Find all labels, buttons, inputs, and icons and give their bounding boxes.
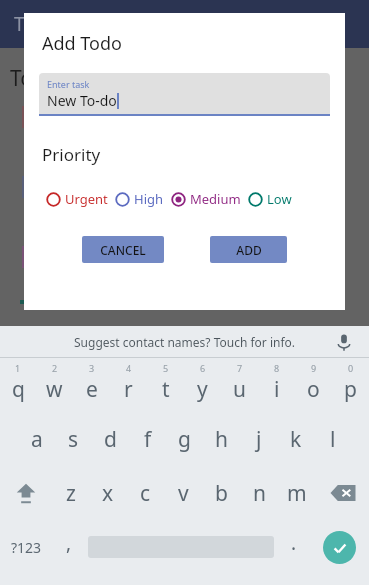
button[interactable]: Voice input — [333, 331, 355, 353]
button[interactable]: ?123 — [0, 520, 52, 574]
staticText: d — [104, 425, 117, 454]
staticText: CANCEL — [100, 242, 146, 258]
button[interactable]: Space — [85, 520, 277, 574]
staticText: ADD — [236, 242, 262, 258]
button[interactable]: l — [314, 412, 351, 466]
staticText: j — [256, 425, 262, 454]
button[interactable]: x — [89, 466, 126, 520]
staticText: y — [197, 375, 208, 404]
staticText: k — [290, 425, 302, 454]
staticText: Todo — [14, 11, 58, 37]
staticText: n — [253, 479, 266, 508]
button[interactable]: 8 — [258, 358, 295, 412]
staticText: Medium — [190, 190, 241, 208]
staticText: m — [287, 479, 307, 508]
staticText: Urgent — [65, 190, 108, 208]
staticText: High — [134, 190, 164, 208]
button[interactable]: CANCEL — [82, 236, 164, 263]
staticText: 6 — [200, 362, 206, 374]
button[interactable]: Backspace — [316, 466, 369, 520]
staticText: 5 — [163, 362, 169, 374]
button[interactable]: 6 — [184, 358, 221, 412]
button[interactable]: f — [129, 412, 166, 466]
button[interactable]: Shift — [0, 466, 52, 520]
staticText: 8 — [274, 362, 280, 374]
button[interactable]: 1 — [0, 358, 36, 412]
staticText: Enter task — [47, 78, 90, 90]
button[interactable]: Enter — [310, 520, 369, 574]
button[interactable]: k — [277, 412, 314, 466]
button[interactable]: j — [240, 412, 277, 466]
staticText: h — [215, 425, 228, 454]
button[interactable]: h — [203, 412, 240, 466]
staticText: Suggest contact names? Touch for info. — [74, 334, 296, 350]
button[interactable]: 0 — [332, 358, 369, 412]
staticText: . — [291, 530, 297, 556]
button[interactable]: z — [52, 466, 89, 520]
staticText: p — [344, 375, 357, 404]
staticText: l — [330, 425, 336, 454]
button[interactable]: 3 — [73, 358, 110, 412]
staticText: f — [144, 425, 152, 454]
button[interactable]: Medium — [171, 190, 241, 208]
button[interactable]: High — [115, 190, 164, 208]
staticText: a — [31, 425, 43, 454]
button[interactable]: Low — [248, 190, 292, 208]
button[interactable]: 9 — [295, 358, 332, 412]
staticText: 3 — [89, 362, 95, 374]
button[interactable]: m — [278, 466, 316, 520]
staticText: New To-do — [47, 91, 117, 110]
staticText: u — [233, 375, 246, 404]
staticText: 0 — [348, 362, 354, 374]
staticText: t — [162, 375, 170, 404]
button[interactable]: n — [240, 466, 278, 520]
staticText: 2 — [52, 362, 58, 374]
button[interactable]: c — [126, 466, 164, 520]
staticText: r — [124, 375, 133, 404]
staticText: 7 — [237, 362, 243, 374]
staticText: x — [102, 479, 114, 508]
button[interactable]: 5 — [147, 358, 184, 412]
staticText: ?123 — [11, 538, 42, 557]
button[interactable]: 7 — [221, 358, 258, 412]
staticText: 9 — [311, 362, 317, 374]
staticText: o — [307, 375, 320, 404]
staticText: e — [86, 375, 98, 404]
button[interactable]: Enter task — [39, 73, 330, 114]
button[interactable]: v — [164, 466, 202, 520]
button[interactable]: g — [166, 412, 203, 466]
staticText: Low — [267, 190, 292, 208]
staticText: c — [140, 479, 151, 508]
staticText: g — [178, 425, 191, 454]
button[interactable]: Suggest contact names? Touch for info. — [0, 326, 369, 357]
button[interactable]: a — [18, 412, 55, 466]
button[interactable]: 2 — [36, 358, 73, 412]
button[interactable]: b — [202, 466, 240, 520]
staticText: , — [66, 530, 72, 556]
staticText: w — [46, 375, 63, 404]
staticText: b — [215, 479, 228, 508]
staticText: s — [68, 425, 79, 454]
staticText: Todo — [10, 64, 59, 93]
button[interactable]: d — [92, 412, 129, 466]
staticText: Priority — [42, 143, 101, 166]
button[interactable]: . — [277, 520, 310, 574]
staticText: 1 — [15, 362, 21, 374]
staticText: Add Todo — [42, 31, 122, 56]
button[interactable]: , — [52, 520, 85, 574]
staticText: v — [178, 479, 189, 508]
button[interactable]: Urgent — [46, 190, 108, 208]
button[interactable]: ADD — [210, 236, 287, 263]
staticText: q — [12, 375, 25, 404]
staticText: z — [66, 479, 76, 508]
staticText: i — [274, 375, 280, 404]
button[interactable]: s — [55, 412, 92, 466]
button[interactable]: 4 — [110, 358, 147, 412]
staticText: 4 — [126, 362, 132, 374]
